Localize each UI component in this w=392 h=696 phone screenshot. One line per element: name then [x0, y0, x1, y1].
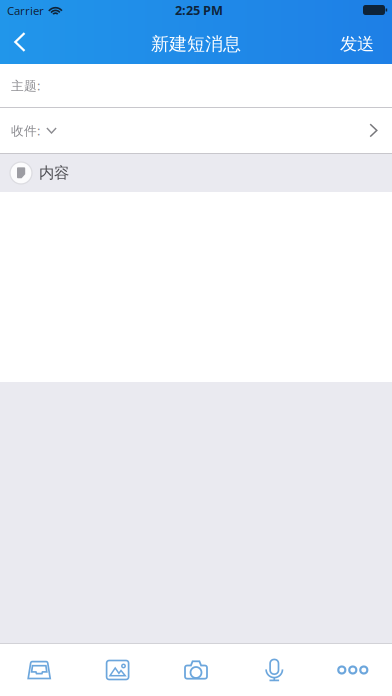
button[interactable]: Back [0, 20, 42, 64]
staticText: 发送 [340, 33, 374, 55]
staticText: 主题: [11, 77, 40, 94]
button[interactable]: More [314, 644, 392, 696]
button[interactable]: Drafts [0, 644, 78, 696]
staticText: 收件: [11, 122, 40, 139]
button[interactable]: Voice message [235, 644, 314, 696]
button[interactable]: Camera [157, 644, 235, 696]
staticText: 新建短消息 [151, 33, 241, 55]
staticText: 内容 [39, 163, 69, 183]
button[interactable]: Photos [78, 644, 157, 696]
staticText: Carrier [7, 3, 44, 18]
button[interactable]: 发送 [324, 20, 392, 64]
staticText: 2:25 PM [175, 1, 223, 19]
button[interactable]: 收件: [0, 108, 392, 153]
